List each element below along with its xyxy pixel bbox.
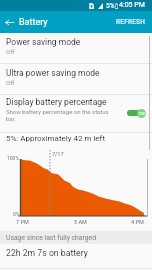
staticText: 7 PM: [16, 219, 29, 225]
staticText: Off: [6, 48, 15, 55]
button[interactable]: REFRESH: [110, 11, 152, 33]
button[interactable]: Ultra power saving mode: [0, 64, 152, 94]
staticText: 0%: [13, 211, 20, 217]
staticText: 7/17: [52, 151, 64, 157]
staticText: Battery: [19, 17, 48, 28]
staticText: 100%: [7, 155, 20, 161]
staticText: 4:05 PM: [119, 1, 145, 9]
staticText: 5%: Approximately 42 m left: [6, 134, 106, 143]
staticText: Ultra power saving mode: [6, 68, 100, 78]
staticText: Off: [6, 79, 15, 86]
button[interactable]: Power saving mode: [0, 33, 152, 63]
staticText: 4 PM: [131, 219, 144, 225]
staticText: 5 AM: [74, 219, 87, 225]
staticText: Display battery percentage: [6, 97, 107, 107]
staticText: 22h 2m 7s on battery: [6, 248, 88, 258]
button[interactable]: Navigate up: [0, 11, 18, 33]
button[interactable]: Display battery percentage: [0, 95, 152, 132]
staticText: 5%: [106, 2, 115, 10]
button[interactable]: 22h 2m 7s on battery: [0, 244, 152, 268]
staticText: Usage since last fully charged: [6, 234, 97, 242]
staticText: REFRESH: [116, 18, 146, 26]
staticText: Show battery percentage on the status ba…: [6, 108, 120, 122]
button[interactable]: Display battery percentage, on: [126, 104, 147, 122]
staticText: Power saving mode: [6, 37, 81, 47]
staticText: ON: [139, 111, 145, 116]
